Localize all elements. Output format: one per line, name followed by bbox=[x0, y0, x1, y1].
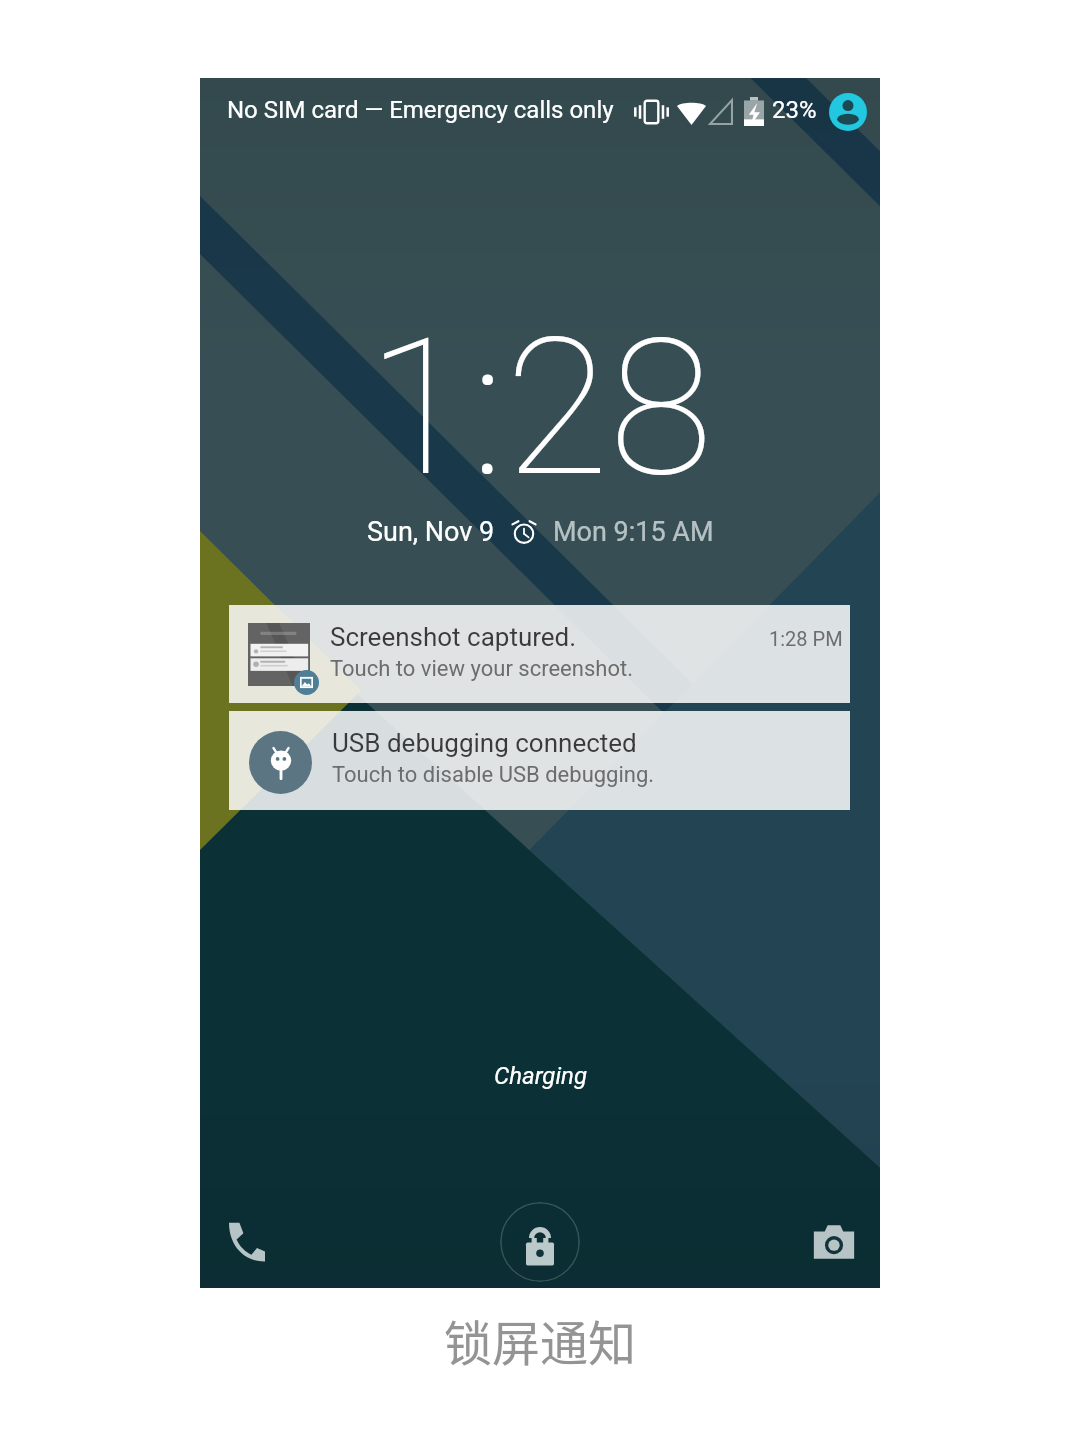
staticText: Charging bbox=[494, 1062, 587, 1090]
staticText: Mon 9:15 AM bbox=[553, 516, 714, 548]
staticText: 1:28 PM bbox=[769, 627, 843, 650]
staticText: Touch to view your screenshot. bbox=[330, 656, 633, 682]
staticText: Touch to disable USB debugging. bbox=[332, 762, 655, 788]
button[interactable]: USB debugging connected bbox=[229, 711, 850, 810]
button[interactable]: Screenshot captured. bbox=[229, 605, 850, 703]
staticText: USB debugging connected bbox=[332, 728, 637, 758]
button[interactable]: Phone bbox=[219, 1216, 271, 1268]
button[interactable]: User profile bbox=[829, 93, 867, 131]
staticText: Sun, Nov 9 bbox=[367, 516, 495, 548]
staticText: 23% bbox=[772, 96, 817, 124]
button[interactable]: Camera bbox=[808, 1216, 860, 1268]
staticText: 锁屏通知 bbox=[0, 1305, 1080, 1375]
staticText: No SIM card — Emergency calls only bbox=[227, 96, 614, 124]
button[interactable]: Unlock bbox=[500, 1202, 580, 1282]
staticText: Screenshot captured. bbox=[330, 622, 577, 652]
staticText: 1:28 bbox=[367, 297, 713, 520]
